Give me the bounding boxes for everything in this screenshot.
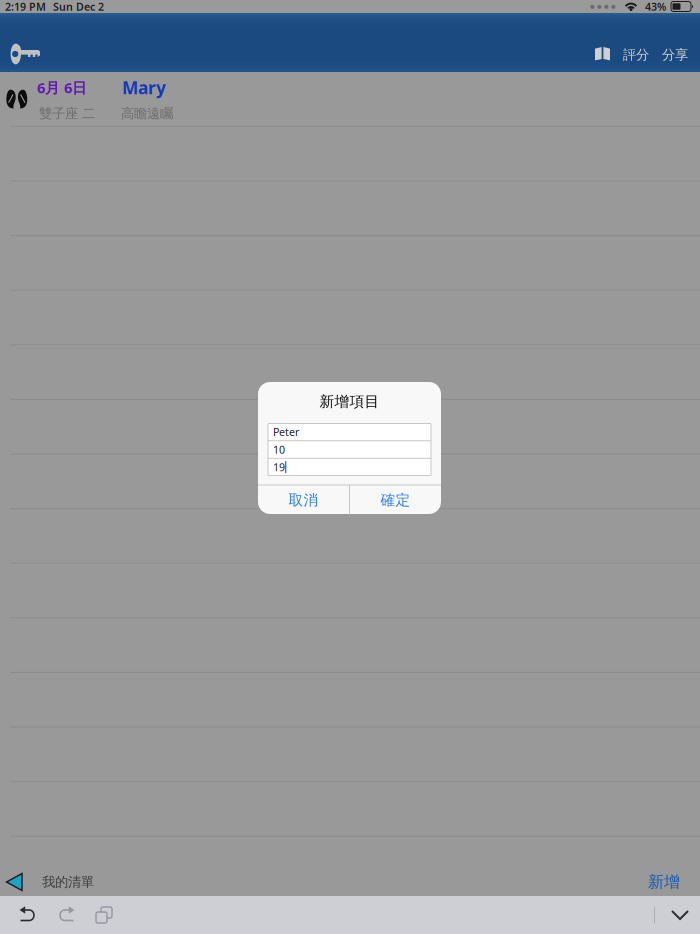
button[interactable]: Book <box>587 13 616 72</box>
staticText: 10 <box>273 442 285 457</box>
staticText: 我的清單 <box>42 874 94 890</box>
staticText: ● ● ● ● <box>590 3 616 10</box>
staticText: 19 <box>273 460 285 474</box>
button[interactable]: Redo <box>49 896 83 934</box>
staticText: 確定 <box>380 491 410 509</box>
staticText: 43% <box>645 0 666 14</box>
staticText: 6月 6日 <box>37 78 87 97</box>
staticText: 評分 <box>623 47 649 63</box>
button[interactable]: 評分 <box>618 13 654 72</box>
staticText: 新增 <box>648 872 680 892</box>
staticText: 2:19 PM <box>5 0 46 14</box>
button[interactable]: Undo <box>11 896 45 934</box>
staticText: 高瞻遠矚 <box>121 105 173 122</box>
button[interactable]: 分享 <box>657 13 693 72</box>
button[interactable]: 確定 <box>350 485 441 514</box>
button[interactable]: Unlock <box>0 13 52 72</box>
button[interactable]: 取消 <box>258 485 349 514</box>
button[interactable]: Hide keyboard <box>661 896 699 934</box>
staticText: Sun Dec 2 <box>53 0 104 14</box>
button[interactable]: Back <box>0 871 31 893</box>
staticText: 取消 <box>288 491 318 509</box>
button[interactable]: 新增 <box>640 871 688 893</box>
staticText: Peter <box>273 425 299 439</box>
button[interactable]: Paste <box>87 896 121 934</box>
staticText: 分享 <box>662 47 688 63</box>
staticText: Mary <box>122 76 166 99</box>
staticText: 雙子座 二 <box>39 105 95 122</box>
staticText: 新增項目 <box>319 392 379 410</box>
